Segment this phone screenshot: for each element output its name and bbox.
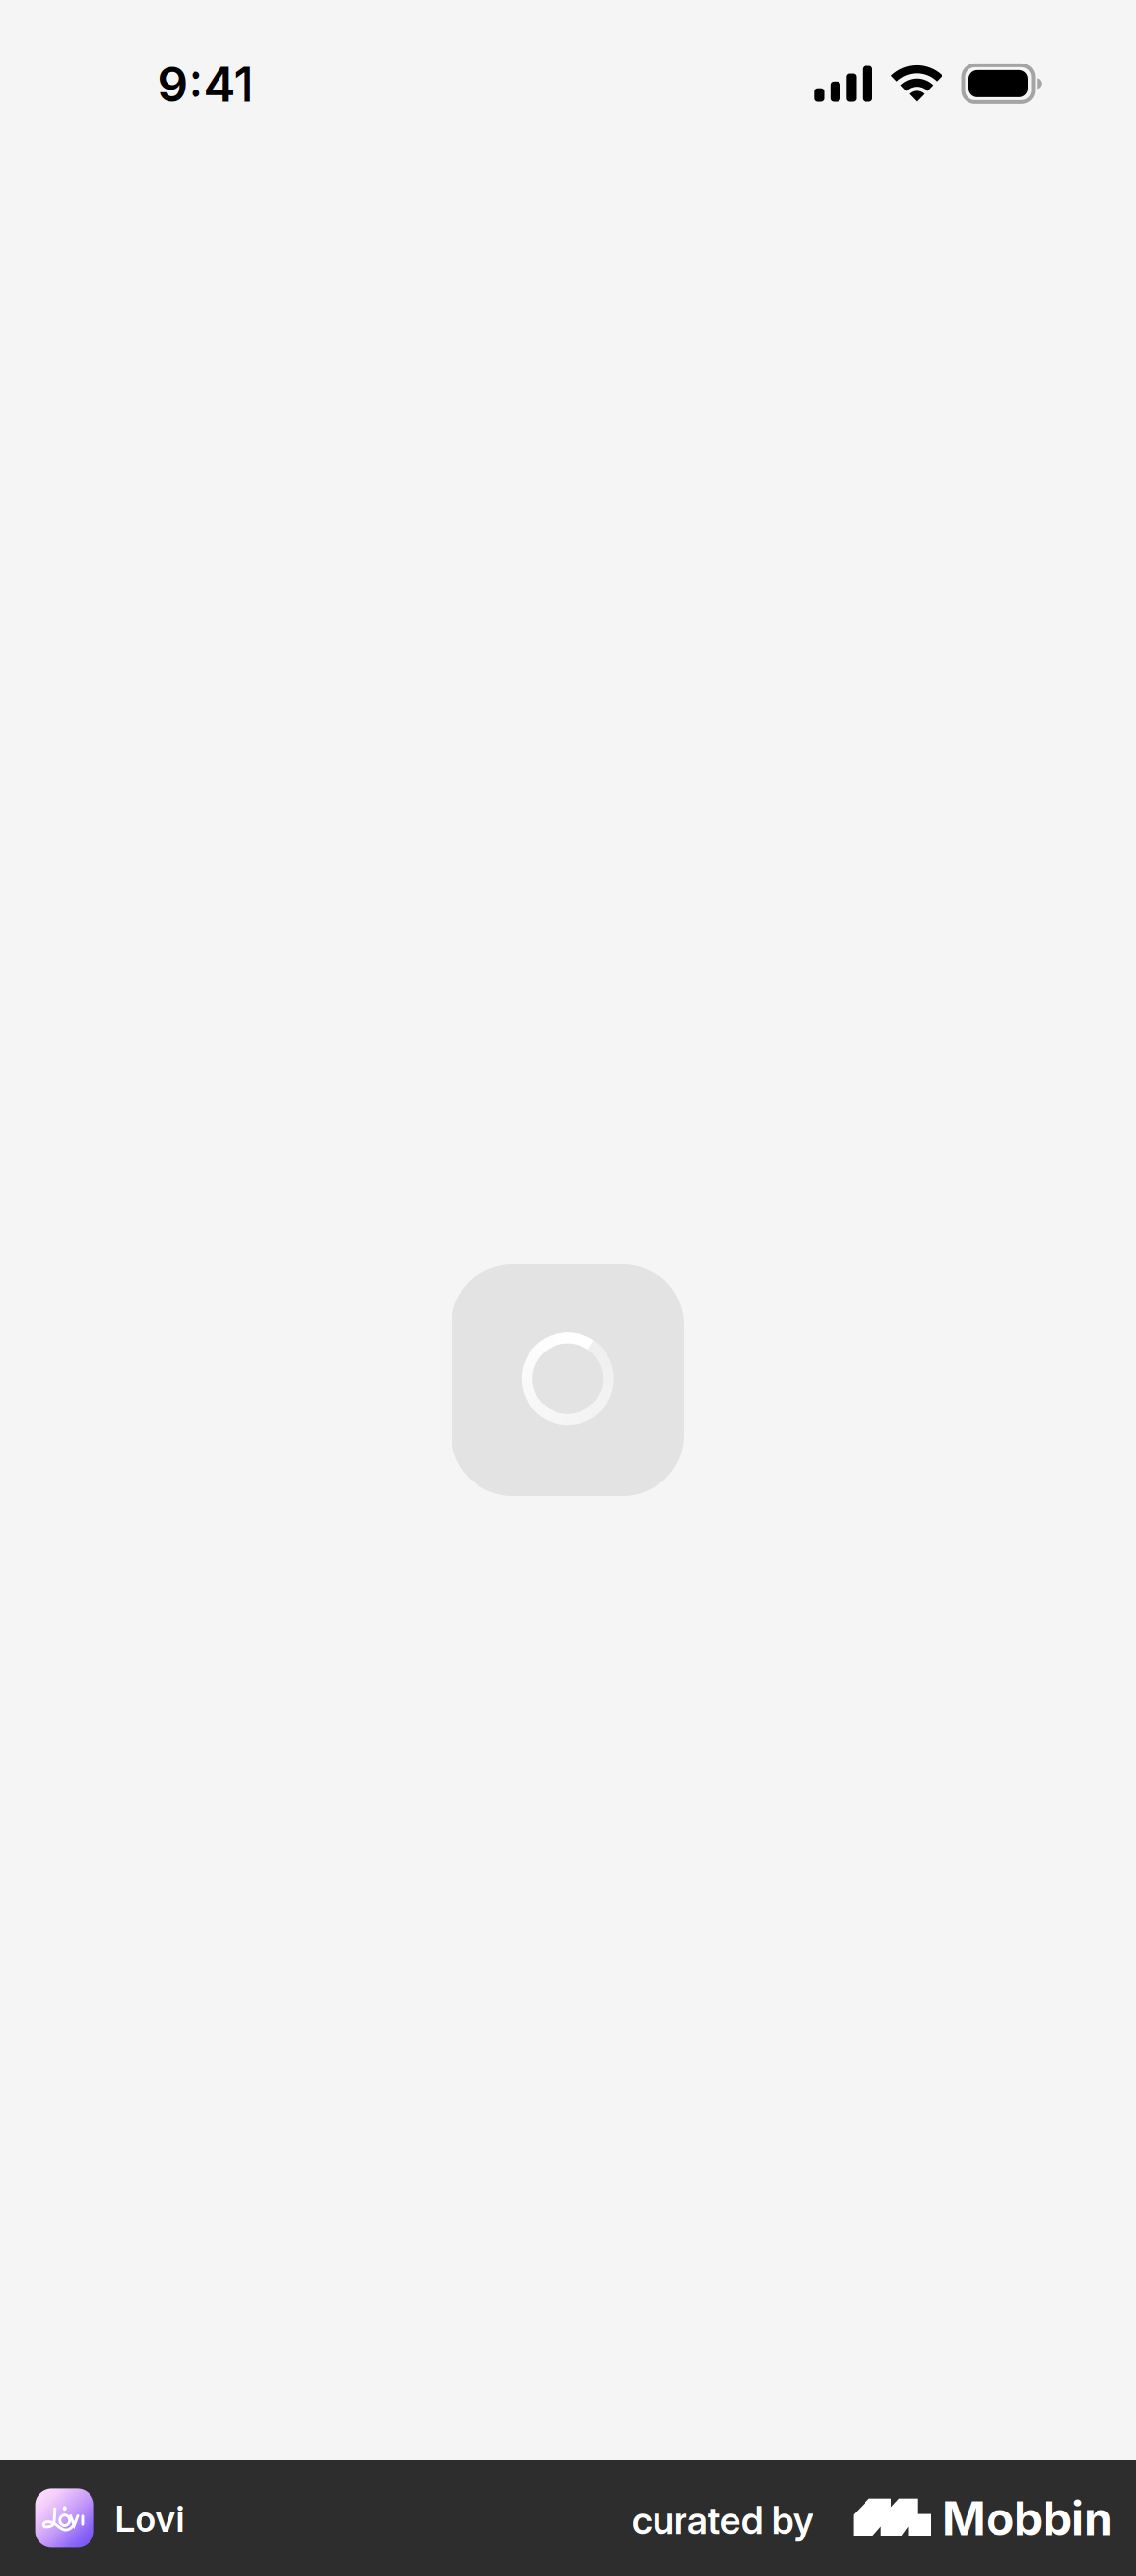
button[interactable]: Lovi <box>0 2460 221 2576</box>
staticText: curated by <box>632 2498 813 2543</box>
button[interactable]: curated by Mobbin <box>616 2460 1136 2576</box>
staticText: 9:41 <box>157 56 254 113</box>
staticText: Mobbin <box>942 2490 1113 2546</box>
staticText: Lovi <box>115 2497 184 2540</box>
